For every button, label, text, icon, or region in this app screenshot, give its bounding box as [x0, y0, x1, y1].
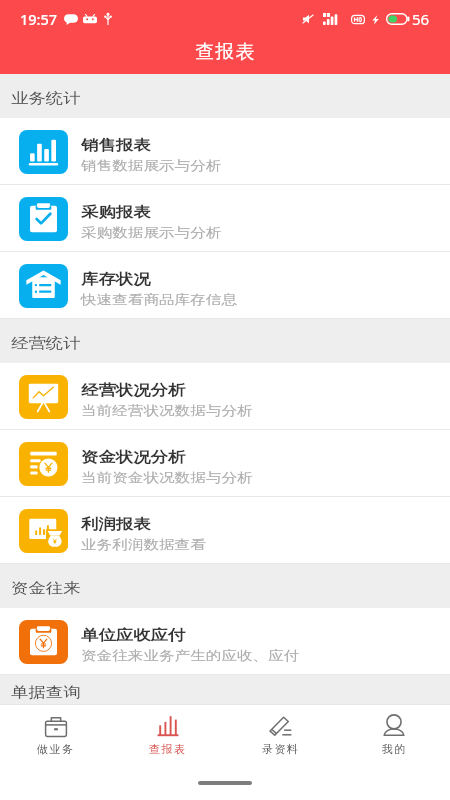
button[interactable]: 资金状况分析 — [0, 430, 450, 497]
staticText: 查报表 — [149, 742, 187, 756]
staticText: 资金往来业务产生的应收、应付 — [81, 647, 299, 663]
button[interactable]: 销售报表 — [0, 118, 450, 185]
staticText: 做业务 — [37, 742, 75, 756]
staticText: 采购数据展示与分析 — [81, 224, 221, 240]
staticText: 资金状况分析 — [81, 448, 185, 466]
staticText: 56 — [412, 9, 430, 29]
staticText: 我的 — [381, 742, 406, 756]
button[interactable]: 单位应收应付 — [0, 608, 450, 675]
button[interactable]: 库存状况 — [0, 252, 450, 319]
staticText: 利润报表 — [81, 515, 151, 533]
staticText: 业务统计 — [11, 89, 81, 107]
staticText: 经营状况分析 — [81, 381, 185, 399]
staticText: 快速查看商品库存信息 — [81, 291, 237, 307]
staticText: 销售报表 — [81, 136, 151, 154]
button[interactable]: 采购报表 — [0, 185, 450, 252]
button[interactable]: 查报表 — [112, 705, 224, 765]
staticText: 19:57 — [20, 9, 58, 29]
staticText: 当前经营状况数据与分析 — [81, 402, 253, 418]
staticText: 业务利润数据查看 — [81, 536, 206, 552]
button[interactable]: 录资料 — [224, 705, 337, 765]
staticText: 库存状况 — [81, 270, 151, 288]
staticText: 单据查询 — [11, 683, 81, 701]
staticText: 单位应收应付 — [81, 626, 185, 644]
button[interactable]: 做业务 — [0, 705, 112, 765]
staticText: 录资料 — [262, 742, 300, 756]
staticText: 资金往来 — [11, 579, 81, 597]
staticText: 采购报表 — [81, 203, 151, 221]
button[interactable]: 我的 — [337, 705, 450, 765]
button[interactable]: 经营状况分析 — [0, 363, 450, 430]
staticText: 当前资金状况数据与分析 — [81, 469, 253, 485]
staticText: 查报表 — [195, 40, 255, 64]
staticText: 销售数据展示与分析 — [81, 157, 221, 173]
staticText: 经营统计 — [11, 334, 81, 352]
button[interactable]: 利润报表 — [0, 497, 450, 564]
